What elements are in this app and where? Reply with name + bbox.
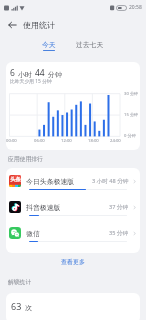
staticText: 12:00 [61, 138, 72, 144]
staticText: 37 分钟 [109, 203, 129, 211]
staticText: 比昨天少用 15 分钟 [10, 78, 52, 85]
staticText: 今天 [42, 40, 56, 49]
staticText: 3 小时 48 分钟 [92, 177, 129, 185]
staticText: 0 分钟 [124, 133, 136, 139]
staticText: 15 分钟 [124, 112, 139, 118]
staticText: 解锁统计 [8, 278, 32, 285]
staticText: 00:00 [6, 138, 17, 144]
staticText: 今日头条极速版 [26, 177, 75, 186]
staticText: 应用使用排行 [8, 155, 43, 162]
staticText: 63 [11, 300, 22, 312]
button[interactable]: Back [4, 17, 19, 32]
staticText: 微信 [26, 229, 40, 238]
staticText: 过去七天 [76, 40, 104, 49]
staticText: 小时 [18, 70, 32, 79]
button[interactable]: 今天 [39, 40, 59, 51]
staticText: 20:58 [129, 4, 142, 11]
staticText: 头条 [10, 176, 21, 183]
button[interactable]: 抖音极速版 [6, 201, 140, 227]
staticText: 查看更多 [61, 258, 85, 266]
staticText: 分钟 [48, 70, 62, 79]
staticText: 6 [10, 67, 15, 79]
button[interactable]: 头条 [6, 175, 140, 201]
button[interactable]: 微信 [6, 227, 140, 253]
staticText: 44 [35, 67, 45, 79]
staticText: 35 分钟 [109, 229, 129, 237]
staticText: 30 分钟 [124, 91, 139, 97]
staticText: 18:00 [88, 138, 99, 144]
staticText: 使用统计 [23, 20, 55, 30]
button[interactable]: 过去七天 [73, 40, 107, 51]
staticText: 24:00 [110, 138, 121, 144]
staticText: 抖音极速版 [26, 203, 61, 212]
button[interactable]: 查看更多 [0, 256, 146, 268]
staticText: 06:00 [34, 138, 45, 144]
staticText: 次 [25, 303, 32, 312]
